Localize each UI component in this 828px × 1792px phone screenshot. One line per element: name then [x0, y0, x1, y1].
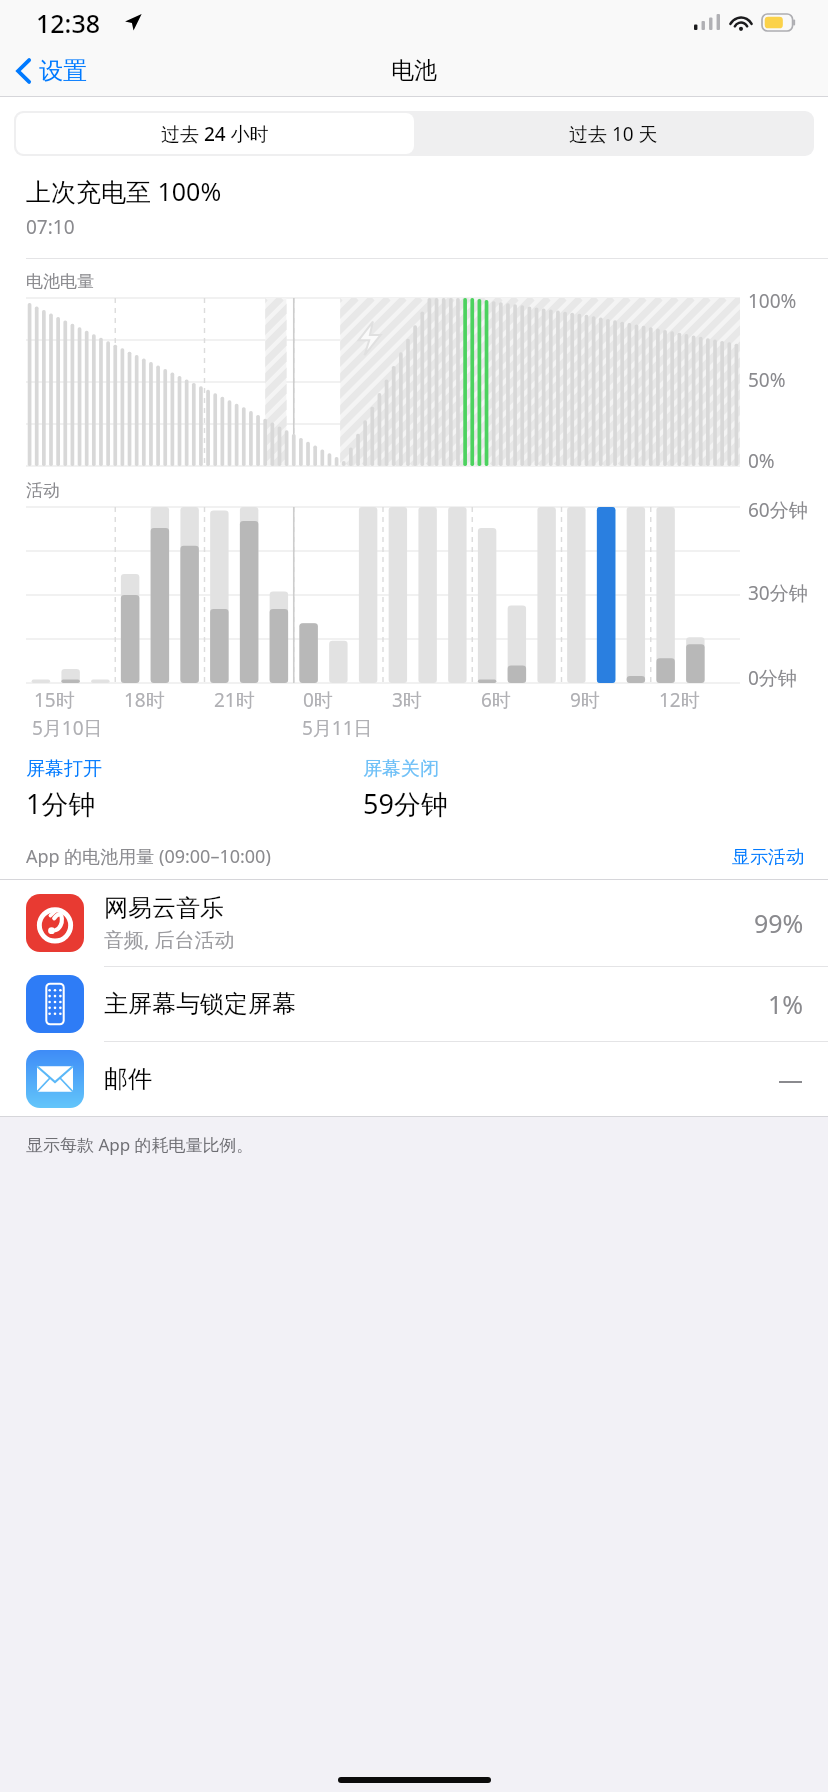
staticText: 15时 [34, 687, 75, 713]
staticText: 电池 [391, 56, 437, 85]
button[interactable]: 邮件 [0, 1042, 828, 1116]
staticText: 0时 [303, 687, 333, 713]
staticText: 屏幕打开 [26, 757, 102, 781]
staticText: 5月10日 [32, 715, 103, 741]
staticText: 60分钟 [748, 497, 808, 523]
button[interactable]: 显示活动 [732, 846, 804, 869]
staticText: 3时 [392, 687, 422, 713]
staticText: 18时 [124, 687, 165, 713]
staticText: 网易云音乐 [104, 893, 224, 923]
staticText: 100% [748, 288, 797, 314]
staticText: 电池电量 [26, 271, 94, 292]
staticText: 9时 [570, 687, 600, 713]
staticText: App 的电池用量 (09:00–10:00) [26, 844, 271, 869]
staticText: 50% [748, 367, 786, 393]
staticText: 5月11日 [302, 715, 373, 741]
button[interactable]: 网易云音乐 [0, 880, 828, 967]
button[interactable]: 过去 24 小时 [16, 113, 414, 154]
staticText: 显示每款 App 的耗电量比例。 [26, 1133, 254, 1156]
staticText: 过去 24 小时 [161, 121, 269, 147]
staticText: 活动 [26, 480, 60, 501]
button[interactable]: 主屏幕与锁定屏幕 [0, 967, 828, 1042]
staticText: 屏幕关闭 [363, 757, 439, 781]
staticText: 过去 10 天 [569, 121, 658, 147]
staticText: 0分钟 [748, 665, 797, 691]
staticText: 99% [754, 906, 804, 940]
staticText: 显示活动 [732, 846, 804, 869]
staticText: 12:38 [36, 6, 101, 40]
staticText: 21时 [214, 687, 255, 713]
staticText: 上次充电至 100% [26, 174, 222, 208]
staticText: 1分钟 [26, 785, 96, 822]
staticText: 12时 [659, 687, 700, 713]
staticText: — [778, 1062, 804, 1096]
button[interactable]: 设置 [0, 50, 99, 92]
staticText: 邮件 [104, 1064, 152, 1094]
staticText: 设置 [39, 56, 87, 86]
staticText: 07:10 [26, 214, 75, 240]
staticText: 0% [748, 448, 775, 474]
staticText: 1% [768, 987, 804, 1021]
staticText: 6时 [481, 687, 511, 713]
staticText: 主屏幕与锁定屏幕 [104, 989, 296, 1019]
staticText: 音频, 后台活动 [104, 926, 235, 953]
staticText: 59分钟 [363, 785, 448, 822]
staticText: 30分钟 [748, 580, 808, 606]
button[interactable]: 过去 10 天 [414, 113, 812, 154]
